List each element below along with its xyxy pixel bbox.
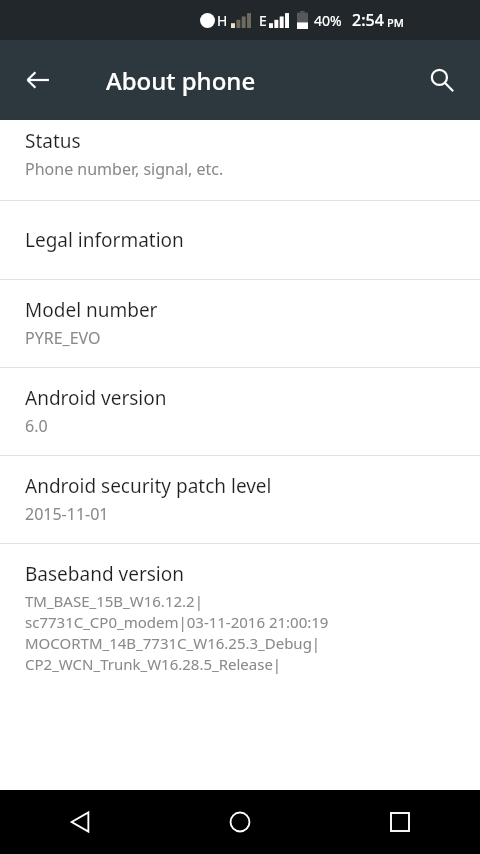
staticText: Phone number, signal, etc.: [25, 158, 224, 180]
staticText: Baseband version: [25, 561, 184, 587]
button[interactable]: Android security patch level: [0, 456, 480, 543]
staticText: Model number: [25, 297, 158, 323]
staticText: H: [217, 11, 228, 30]
button[interactable]: Baseband version: [0, 544, 480, 685]
staticText: Android security patch level: [25, 473, 272, 499]
button[interactable]: Android version: [0, 368, 480, 455]
staticText: Legal information: [25, 227, 184, 253]
button[interactable]: Home: [160, 790, 320, 854]
staticText: 6.0: [25, 415, 48, 437]
staticText: 2015-11-01: [25, 503, 109, 525]
staticText: TM_BASE_15B_W16.12.2| sc7731C_CP0_modem|…: [25, 591, 329, 675]
button[interactable]: Legal information: [0, 201, 480, 279]
button[interactable]: Recent apps: [320, 790, 480, 854]
button[interactable]: Back: [10, 52, 66, 108]
staticText: E: [259, 11, 267, 30]
staticText: 40%: [314, 11, 342, 30]
staticText: Android version: [25, 385, 167, 411]
button[interactable]: Status: [0, 120, 480, 200]
staticText: PYRE_EVO: [25, 327, 101, 349]
button[interactable]: Model number: [0, 280, 480, 367]
button[interactable]: Search: [416, 54, 468, 106]
button[interactable]: Back: [0, 790, 160, 854]
staticText: Status: [25, 128, 81, 154]
staticText: About phone: [106, 64, 256, 97]
staticText: PM: [387, 15, 404, 30]
staticText: 2:54: [352, 9, 384, 31]
